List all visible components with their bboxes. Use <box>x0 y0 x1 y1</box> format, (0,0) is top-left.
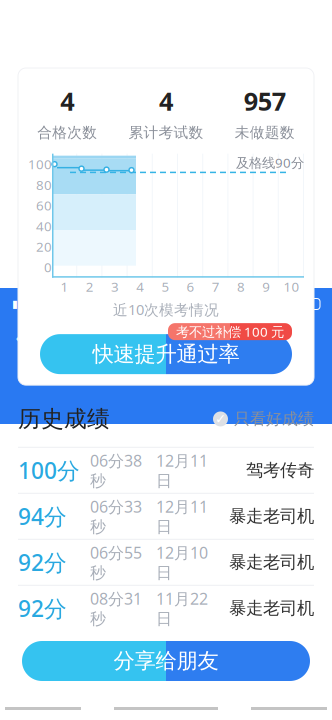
staticText: 2 <box>86 278 94 295</box>
staticText: 快速提升通过率 <box>92 341 239 367</box>
staticText: 1 <box>61 278 69 295</box>
staticText: 0 <box>44 258 52 276</box>
staticText: 暴走老司机 <box>229 552 314 573</box>
staticText: 排行榜 <box>169 326 226 349</box>
staticText: 驾考传奇 <box>246 460 314 481</box>
button[interactable]: 100分 <box>0 448 332 493</box>
staticText: 06分55秒 <box>90 542 142 583</box>
staticText: 100 <box>28 155 52 173</box>
staticText: 4 <box>136 278 144 295</box>
staticText: 分享给朋友 <box>113 648 218 674</box>
button[interactable]: 排行榜 <box>166 325 229 350</box>
button[interactable]: 分享给朋友 <box>22 641 310 681</box>
button[interactable]: 返回 <box>6 318 46 358</box>
staticText: 06分33秒 <box>90 496 142 537</box>
staticText: 100分 <box>18 455 80 485</box>
button[interactable]: 成绩 <box>103 325 166 350</box>
button[interactable]: 94分 <box>0 494 332 539</box>
staticText: 暴走老司机 <box>229 506 314 527</box>
staticText: 累计考试数 <box>128 124 203 142</box>
staticText: ← <box>15 323 37 353</box>
staticText: 暴走老司机 <box>229 598 314 619</box>
staticText: 考不过补偿 100 元 <box>176 323 284 340</box>
staticText: 92分 <box>18 547 67 577</box>
staticText: 4 <box>60 84 74 118</box>
staticText: 4 <box>159 84 173 118</box>
staticText: 9 <box>262 278 270 295</box>
staticText: 20 <box>36 238 52 255</box>
staticText: 分享 <box>274 326 314 350</box>
staticText: 40 <box>36 217 52 235</box>
staticText: 3 <box>111 278 119 295</box>
button[interactable]: ✓ <box>213 403 314 435</box>
staticText: 06分38秒 <box>90 450 142 491</box>
staticText: 11月22日 <box>156 588 208 629</box>
staticText: 10 <box>283 278 299 295</box>
staticText: 未做题数 <box>235 124 295 142</box>
staticText: 12月11日 <box>156 450 208 491</box>
staticText: 及格线90分 <box>236 154 304 171</box>
staticText: 60 <box>36 196 52 214</box>
staticText: 80 <box>36 176 52 194</box>
staticText: ✓ <box>215 411 226 426</box>
staticText: 合格次数 <box>37 124 97 142</box>
staticText: ▮▮▮ <box>12 298 30 310</box>
staticText: 只看好成绩 <box>234 409 314 429</box>
button[interactable]: 92分 <box>0 540 332 585</box>
staticText: 历史成绩 <box>18 405 110 433</box>
button[interactable]: 92分 <box>0 586 332 631</box>
staticText: 8 <box>237 278 245 295</box>
staticText: 7 <box>212 278 220 295</box>
staticText: 08分31秒 <box>90 588 142 629</box>
staticText: 94分 <box>18 501 67 531</box>
staticText: 12月10日 <box>156 542 208 583</box>
staticText: 92分 <box>18 593 67 623</box>
staticText: 957 <box>244 84 286 118</box>
button[interactable]: 快速提升通过率 <box>40 334 292 374</box>
staticText: 近10次模考情况 <box>113 300 219 319</box>
staticText: 12月11日 <box>156 496 208 537</box>
staticText: 6 <box>187 278 195 295</box>
button[interactable]: 分享 <box>262 318 326 358</box>
staticText: 成绩 <box>115 326 153 349</box>
staticText: 5 <box>161 278 169 295</box>
